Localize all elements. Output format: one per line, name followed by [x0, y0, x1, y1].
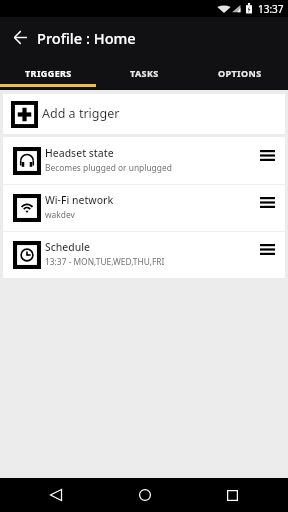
button[interactable]: TASKS [96, 60, 192, 90]
button[interactable]: TRIGGERS [0, 60, 96, 90]
staticText: wakdev [45, 209, 75, 220]
staticText: OPTIONS [218, 67, 262, 79]
staticText: 13:37 - MON,TUE,WED,THU,FRI [45, 256, 165, 267]
button[interactable]: Recents [208, 478, 257, 512]
staticText: Profile : Home [37, 28, 136, 48]
staticText: Schedule [45, 240, 91, 254]
staticText: 13:37 [258, 2, 284, 16]
staticText: Becomes plugged or unplugged [45, 162, 172, 173]
button[interactable]: Schedule [3, 231, 285, 278]
button[interactable]: OPTIONS [192, 60, 288, 90]
button[interactable]: Back [31, 478, 80, 512]
staticText: TASKS [130, 67, 159, 79]
button[interactable]: Add a trigger [3, 94, 285, 134]
button[interactable]: Back [0, 17, 40, 60]
button[interactable]: Reorder [256, 144, 278, 166]
button[interactable]: Home [120, 478, 169, 512]
button[interactable]: Headset state [3, 137, 285, 184]
staticText: Headset state [45, 146, 114, 160]
button[interactable]: Wi-Fi network [3, 184, 285, 231]
button[interactable]: Reorder [256, 191, 278, 213]
button[interactable]: Reorder [256, 238, 278, 260]
staticText: Add a trigger [42, 105, 120, 122]
staticText: TRIGGERS [25, 67, 72, 79]
staticText: Wi-Fi network [45, 193, 114, 207]
